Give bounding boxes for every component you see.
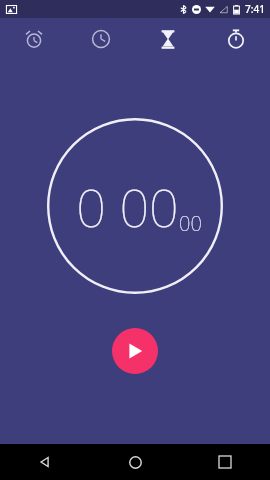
button[interactable]: Stopwatch bbox=[202, 18, 270, 60]
button[interactable]: Alarm bbox=[0, 18, 67, 60]
staticText: 00 bbox=[179, 210, 202, 237]
button[interactable]: Recent apps bbox=[180, 444, 270, 480]
button[interactable]: Home bbox=[90, 444, 180, 480]
staticText: 0 00 bbox=[76, 171, 179, 242]
button[interactable]: Clock bbox=[67, 18, 134, 60]
button[interactable]: Start timer bbox=[112, 328, 158, 374]
button[interactable]: Timer bbox=[134, 18, 202, 60]
button[interactable]: Back bbox=[0, 444, 90, 480]
staticText: 7:41 bbox=[245, 2, 265, 16]
